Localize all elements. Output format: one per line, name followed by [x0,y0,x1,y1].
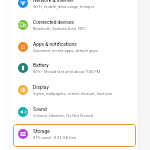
staticText: Connected devices [33,20,75,26]
staticText: Styles, wallpapers, screen timeout, font… [33,91,113,96]
other: Storage [18,129,28,139]
button[interactable] [13,58,136,79]
staticText: 80% - Should last until about 9:45 PM [33,69,101,74]
button[interactable] [13,36,136,57]
button[interactable] [13,80,136,101]
staticText: Volume, vibration, Do Not Disturb [33,113,93,118]
staticText: Network & internet [33,0,74,4]
other: Display [18,85,28,95]
button[interactable] [13,14,136,35]
other: Network & internet [18,0,28,8]
other: Connected devices [18,20,28,30]
staticText: Sound [33,107,47,113]
other: Battery [18,63,28,73]
staticText: Apps & notifications [33,42,77,48]
other: Sound [18,107,28,117]
button[interactable] [13,123,136,144]
staticText: Wi-Fi, mobile, data usage, hotspot [33,4,95,9]
staticText: Battery [33,63,49,69]
staticText: Bluetooth, Android Auto, NFC [33,26,86,31]
staticText: 87% used - 8.33 GB free [33,135,77,140]
other: Apps & notifications [18,42,28,52]
button[interactable] [13,0,136,14]
staticText: Assistant, recent apps, default apps [33,48,98,53]
button[interactable] [13,101,136,122]
staticText: Display [33,85,49,91]
staticText: Storage [33,129,50,135]
